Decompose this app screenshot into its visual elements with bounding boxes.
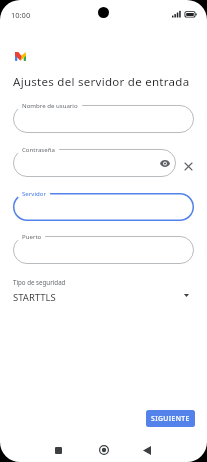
button[interactable]: Show password	[158, 156, 172, 170]
button[interactable]: Tipo de seguridad	[0, 272, 207, 304]
staticText: Nombre de usuario	[22, 101, 78, 109]
staticText: STARTTLS	[13, 291, 56, 304]
staticText: 10:00	[11, 10, 31, 20]
button[interactable]: Back	[134, 437, 160, 462]
staticText: Puerto	[22, 232, 42, 240]
staticText: Contraseña	[22, 145, 55, 153]
button[interactable]: Clear	[181, 159, 196, 174]
button[interactable]: Puerto	[13, 236, 194, 264]
staticText: Tipo de seguridad	[13, 278, 66, 286]
staticText: Servidor	[22, 189, 46, 197]
button[interactable]: Nombre de usuario	[13, 105, 194, 133]
staticText: Ajustes del servidor de entrada	[13, 74, 190, 90]
button[interactable]: Servidor	[13, 193, 194, 221]
button[interactable]: Home	[91, 437, 117, 462]
button[interactable]: Recents	[45, 437, 71, 462]
button[interactable]: SIGUIENTE	[146, 410, 195, 427]
button[interactable]: Contraseña	[13, 149, 176, 177]
staticText: SIGUIENTE	[151, 414, 190, 423]
